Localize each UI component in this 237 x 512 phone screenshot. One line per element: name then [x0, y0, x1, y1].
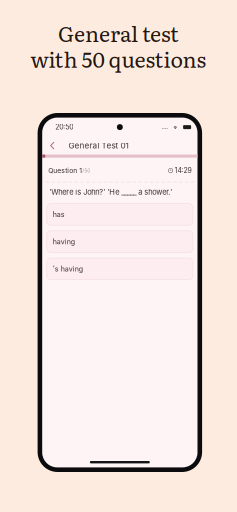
- staticText: 14:29: [174, 166, 191, 175]
- staticText: General test: [58, 17, 179, 49]
- staticText: with 50 questions: [30, 43, 206, 74]
- staticText: has: [53, 210, 65, 219]
- staticText: General Test 01: [69, 141, 129, 150]
- button[interactable]: Back: [45, 137, 60, 155]
- staticText: 'Where is John?' 'He _____ a shower.': [49, 188, 172, 197]
- staticText: having: [53, 237, 75, 246]
- button[interactable]: having: [47, 231, 193, 252]
- button[interactable]: has: [47, 204, 193, 225]
- staticText: Question 1: [48, 166, 82, 175]
- staticText: 20:50: [55, 123, 73, 131]
- staticText: 's having: [53, 265, 83, 273]
- button[interactable]: 's having: [47, 258, 193, 280]
- staticText: /50: [82, 167, 90, 174]
